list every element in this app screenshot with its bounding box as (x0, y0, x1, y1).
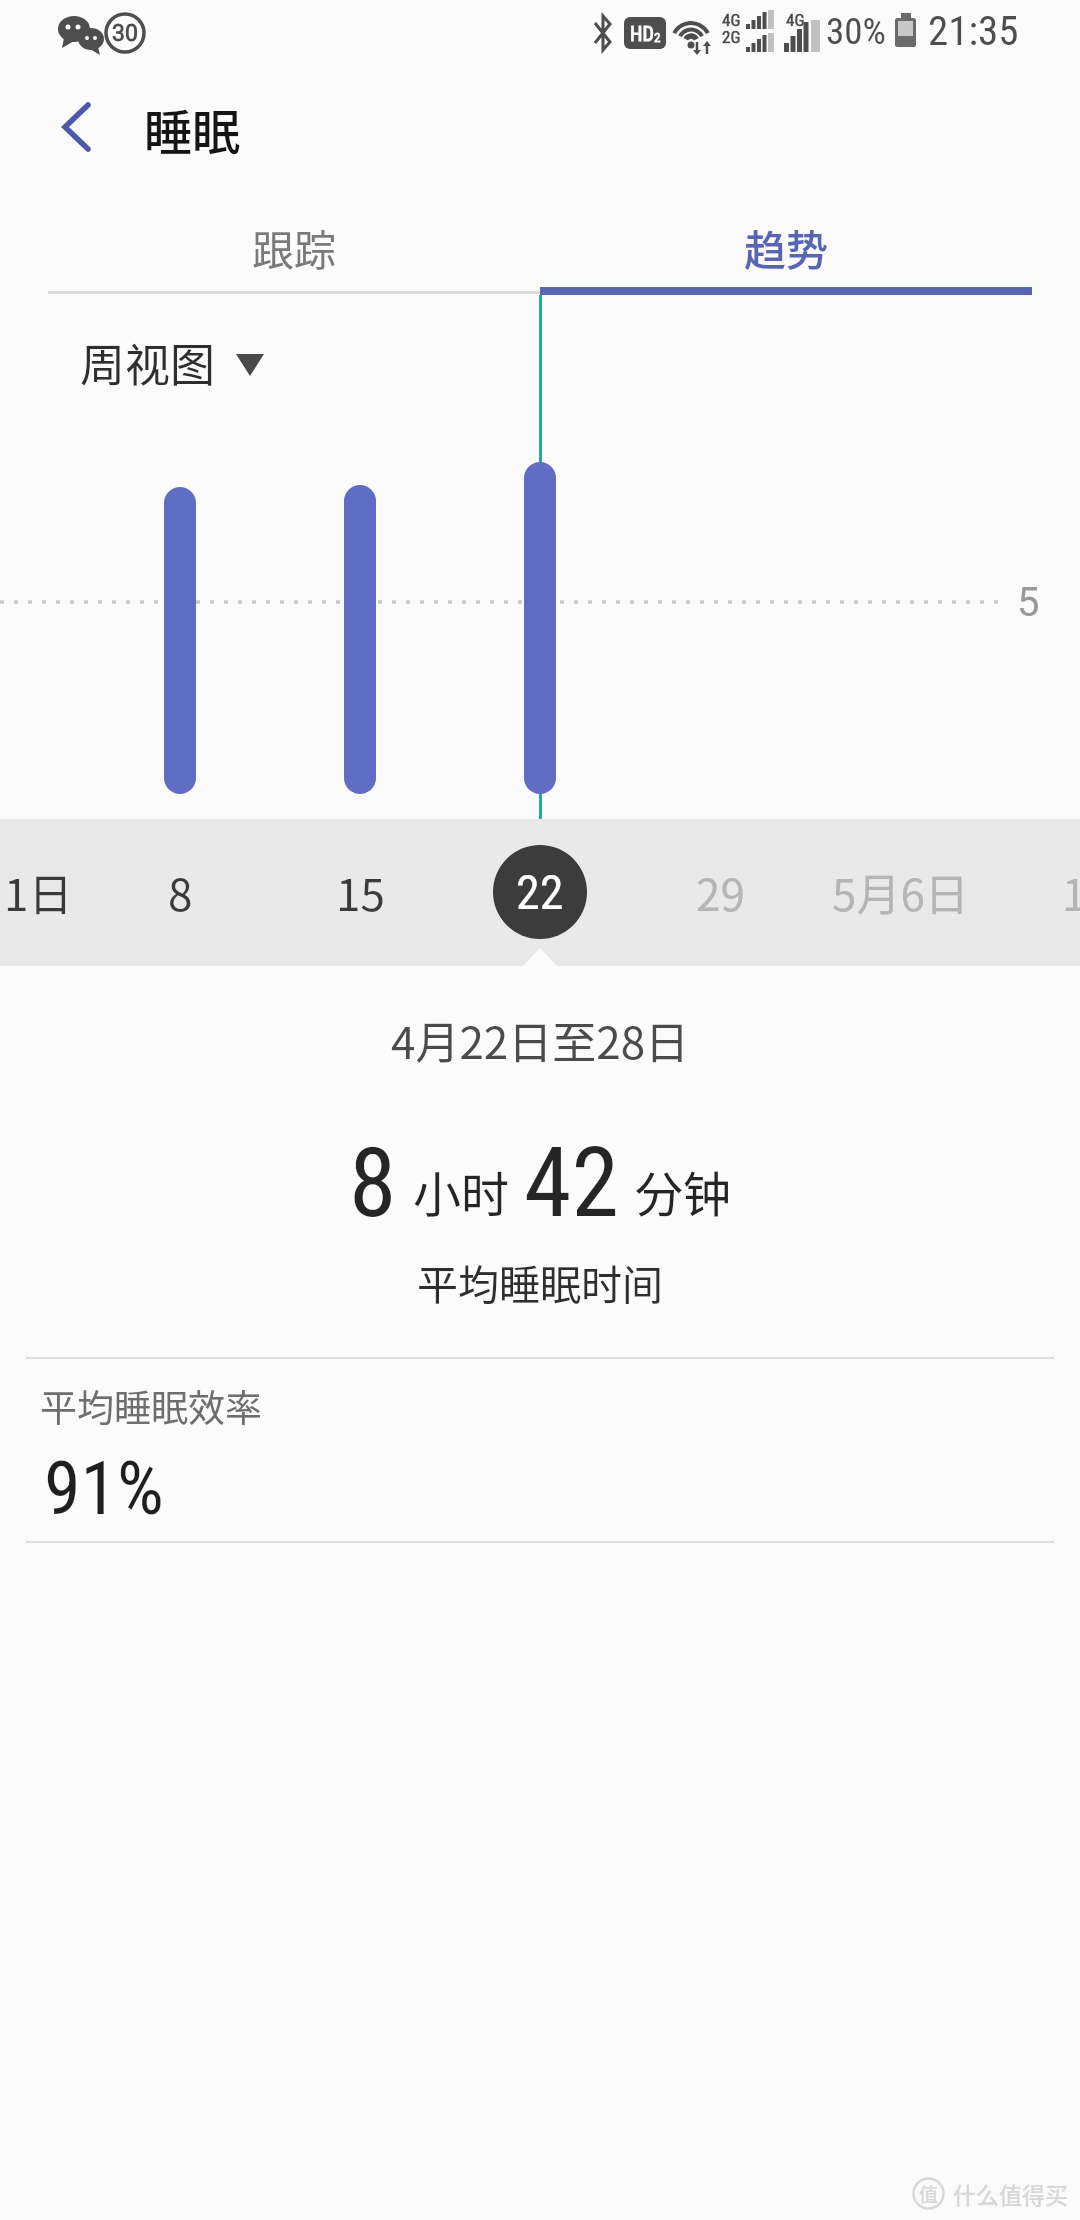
staticText: 30 (112, 20, 138, 47)
staticText: 4月22日至28日 (391, 1008, 690, 1072)
staticText: 91% (44, 1445, 164, 1532)
button[interactable]: 22 (493, 845, 587, 939)
button[interactable]: 跟踪 (48, 200, 540, 295)
staticText: 5 (1017, 579, 1040, 626)
staticText: 30% (826, 10, 886, 53)
staticText: 2G (722, 27, 741, 47)
staticText: 15 (336, 860, 385, 924)
staticText: 13 (1062, 860, 1080, 924)
staticText: 跟踪 (252, 217, 337, 278)
staticText: 21:35 (928, 7, 1019, 55)
staticText: 小时 (413, 1156, 510, 1226)
staticText: 5月6日 (832, 860, 969, 924)
staticText: 2 (654, 30, 661, 45)
staticText: 4G (786, 10, 805, 30)
staticText: 平均睡眠效率 (40, 1379, 262, 1433)
staticText: 8 (349, 1127, 397, 1240)
staticText: 29 (696, 860, 745, 924)
staticText: 1日 (4, 860, 73, 924)
staticText: 22 (516, 864, 564, 920)
staticText: 什么值得买 (953, 2177, 1068, 2210)
button[interactable] (40, 92, 110, 162)
staticText: 42 (524, 1127, 619, 1240)
button[interactable]: 5月6日 (800, 847, 1000, 937)
button[interactable] (70, 330, 280, 396)
button[interactable]: 15 (290, 847, 430, 937)
staticText: 平均睡眠时间 (417, 1252, 663, 1311)
staticText: 4G (722, 10, 741, 30)
button[interactable]: 8 (110, 847, 250, 937)
staticText: HD (630, 22, 654, 45)
staticText: 分钟 (635, 1156, 732, 1226)
staticText: 周视图 (80, 330, 216, 395)
staticText: 睡眠 (144, 94, 241, 164)
button[interactable]: 趋势 (540, 200, 1032, 295)
button[interactable]: 29 (650, 847, 790, 937)
staticText: 趋势 (744, 217, 829, 278)
staticText: 值 (919, 2180, 939, 2208)
staticText: 8 (168, 860, 193, 924)
